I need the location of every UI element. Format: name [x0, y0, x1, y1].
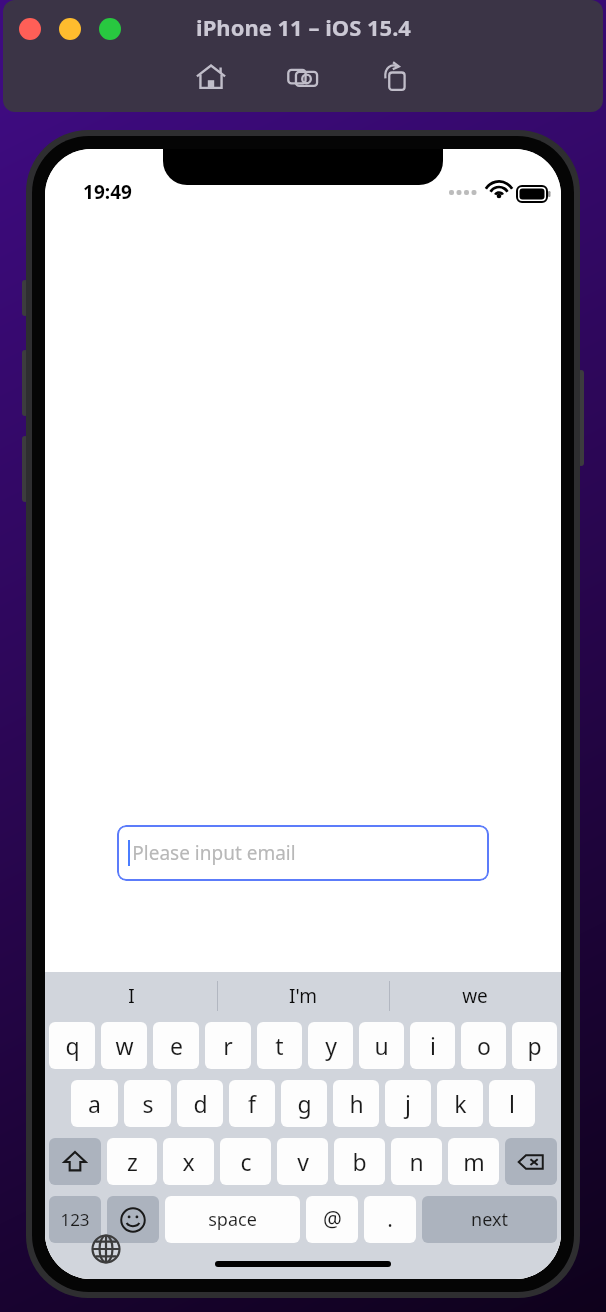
staticText: e	[170, 1030, 183, 1061]
staticText: l	[509, 1088, 515, 1119]
button[interactable]: b	[334, 1138, 385, 1185]
staticText: Please input email	[132, 840, 296, 866]
button[interactable]: u	[359, 1022, 404, 1069]
button[interactable]: Emoji	[107, 1196, 159, 1243]
button[interactable]: q	[49, 1022, 95, 1069]
button[interactable]: .	[364, 1196, 416, 1243]
button[interactable]: Please input email	[117, 825, 489, 881]
staticText: w	[115, 1030, 134, 1061]
button[interactable]: e	[153, 1022, 199, 1069]
button[interactable]: space	[165, 1196, 300, 1243]
button[interactable]: w	[101, 1022, 147, 1069]
staticText: k	[454, 1088, 467, 1119]
staticText: y	[325, 1030, 337, 1061]
staticText: q	[65, 1030, 80, 1061]
staticText: 123	[60, 1208, 90, 1231]
staticText: next	[471, 1207, 508, 1232]
staticText: m	[463, 1146, 485, 1177]
button[interactable]: Backspace	[505, 1138, 557, 1185]
button[interactable]: l	[489, 1080, 535, 1127]
staticText: p	[527, 1030, 542, 1061]
staticText: d	[193, 1088, 208, 1119]
staticText: .	[387, 1205, 393, 1234]
button[interactable]: o	[461, 1022, 506, 1069]
staticText: h	[349, 1088, 364, 1119]
button[interactable]: y	[308, 1022, 353, 1069]
staticText: r	[223, 1030, 233, 1061]
staticText: iPhone 11 – iOS 15.4	[196, 12, 411, 42]
button[interactable]: c	[220, 1138, 271, 1185]
staticText: s	[142, 1088, 154, 1119]
button[interactable]: h	[333, 1080, 379, 1127]
button[interactable]: @	[306, 1196, 358, 1243]
button[interactable]: s	[124, 1080, 171, 1127]
button[interactable]: Rotate	[374, 56, 416, 98]
button[interactable]: f	[229, 1080, 275, 1127]
staticText: j	[405, 1088, 411, 1119]
staticText: we	[462, 983, 488, 1009]
button[interactable]: v	[277, 1138, 328, 1185]
staticText: 19:49	[83, 179, 132, 205]
staticText: I	[128, 983, 135, 1009]
button[interactable]: n	[391, 1138, 442, 1185]
button[interactable]: r	[205, 1022, 251, 1069]
button[interactable]: a	[71, 1080, 118, 1127]
staticText: t	[275, 1030, 284, 1061]
staticText: space	[208, 1207, 257, 1232]
staticText: c	[240, 1146, 252, 1177]
staticText: v	[297, 1146, 309, 1177]
button[interactable]: x	[163, 1138, 214, 1185]
button[interactable]: Minimise	[59, 18, 81, 40]
staticText: f	[248, 1088, 256, 1119]
staticText: I'm	[289, 983, 317, 1009]
staticText: z	[127, 1146, 138, 1177]
button[interactable]: I	[45, 972, 217, 1020]
staticText: n	[409, 1146, 424, 1177]
button[interactable]: m	[448, 1138, 499, 1185]
button[interactable]: g	[281, 1080, 327, 1127]
button[interactable]: Shift	[49, 1138, 101, 1185]
staticText: @	[323, 1205, 342, 1234]
button[interactable]: z	[107, 1138, 157, 1185]
button[interactable]: t	[257, 1022, 302, 1069]
button[interactable]: I'm	[217, 972, 389, 1020]
staticText: u	[374, 1030, 389, 1061]
button[interactable]: i	[410, 1022, 455, 1069]
button[interactable]: j	[385, 1080, 431, 1127]
button[interactable]: Change keyboard	[85, 1228, 127, 1270]
button[interactable]: p	[512, 1022, 557, 1069]
button[interactable]: d	[177, 1080, 223, 1127]
staticText: i	[430, 1030, 436, 1061]
staticText: b	[352, 1146, 367, 1177]
staticText: x	[182, 1146, 195, 1177]
button[interactable]: k	[437, 1080, 483, 1127]
button[interactable]: next	[422, 1196, 557, 1243]
staticText: o	[477, 1030, 491, 1061]
staticText: g	[297, 1088, 312, 1119]
button[interactable]: Home	[190, 56, 232, 98]
button[interactable]: 123	[49, 1196, 101, 1243]
staticText: a	[88, 1088, 101, 1119]
button[interactable]: Close	[19, 18, 41, 40]
button[interactable]: Maximise	[99, 18, 121, 40]
button[interactable]: we	[389, 972, 561, 1020]
button[interactable]: Screenshot	[282, 56, 324, 98]
